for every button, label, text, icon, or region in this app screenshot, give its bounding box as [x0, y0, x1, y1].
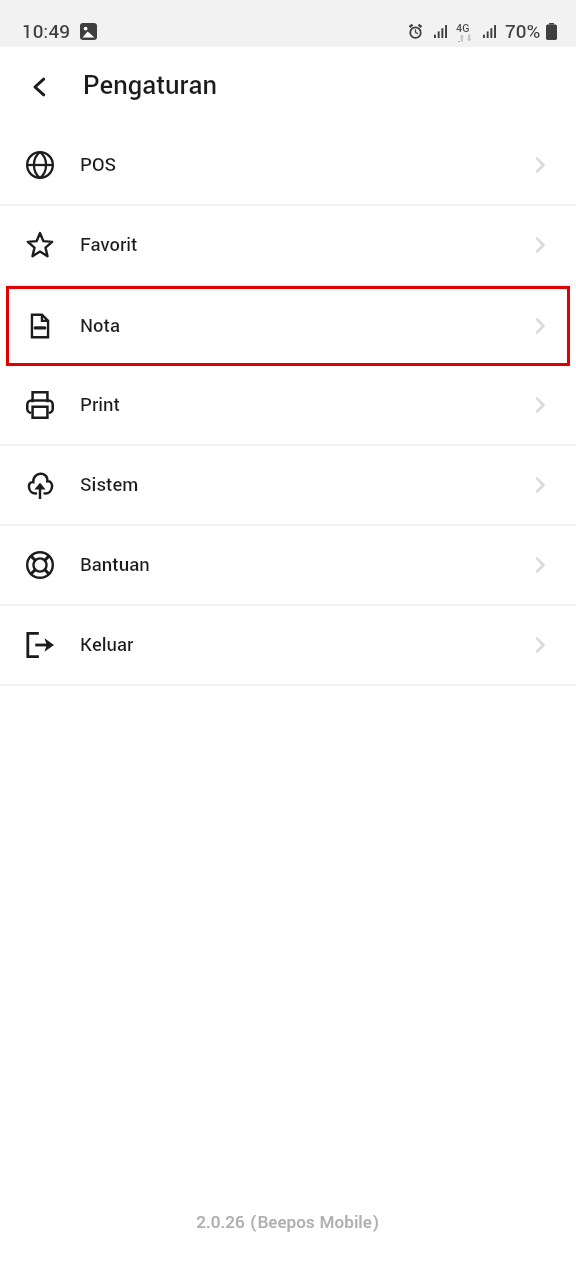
staticText: Bantuan [80, 552, 150, 579]
staticText: Keluar [80, 632, 134, 659]
button[interactable]: Keluar [0, 606, 576, 684]
staticText: 70% [505, 18, 541, 45]
button[interactable]: Sistem [0, 446, 576, 524]
button[interactable]: Bantuan [0, 526, 576, 604]
button[interactable]: Favorit [0, 206, 576, 284]
staticText: 4G+ [456, 21, 474, 42]
staticText: Print [80, 392, 120, 419]
staticText: Favorit [80, 232, 138, 259]
button[interactable]: Back [20, 68, 58, 106]
button[interactable]: Nota [0, 286, 576, 366]
staticText: Sistem [80, 472, 139, 499]
staticText: Pengaturan [83, 67, 217, 104]
button[interactable]: Print [0, 366, 576, 444]
button[interactable]: POS [0, 126, 576, 204]
staticText: POS [80, 152, 117, 179]
staticText: Nota [80, 313, 121, 340]
staticText: 2.0.26 (Beepos Mobile) [0, 1210, 576, 1235]
staticText: 10:49 [22, 18, 71, 45]
